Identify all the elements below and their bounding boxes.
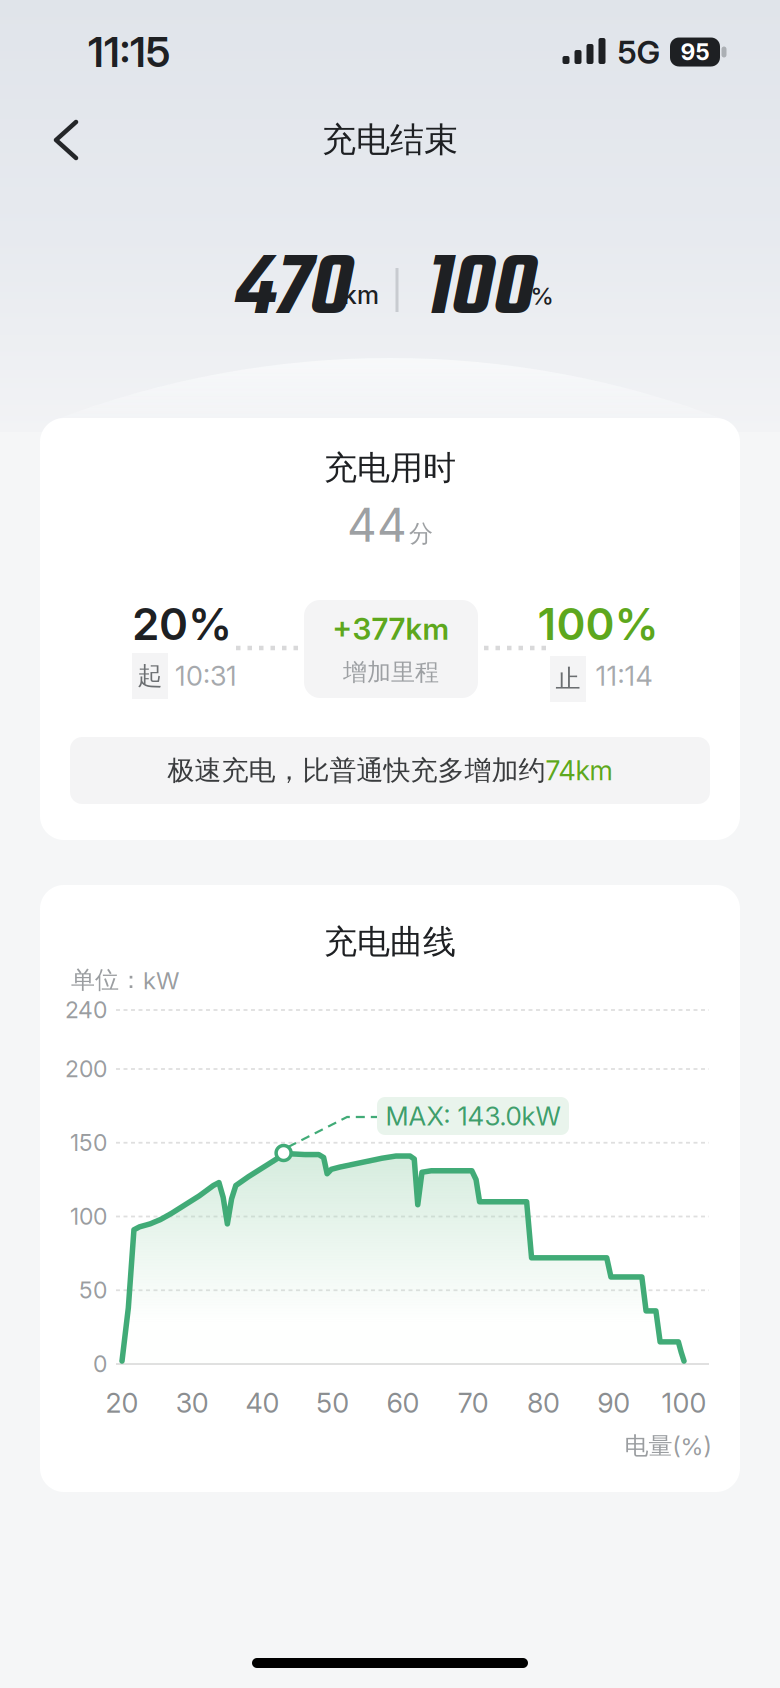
- staticText: 200: [65, 1055, 107, 1083]
- staticText: 5G: [617, 33, 660, 71]
- staticText: 充电曲线: [324, 921, 456, 963]
- staticText: 极速充电，比普通快充多增加约: [167, 753, 545, 787]
- staticText: 增加里程: [343, 657, 439, 687]
- staticText: 90: [597, 1387, 630, 1419]
- staticText: 11:15: [88, 27, 170, 77]
- staticText: %: [530, 281, 553, 310]
- staticText: 50: [79, 1276, 107, 1304]
- staticText: 起: [137, 660, 162, 692]
- staticText: 分: [409, 519, 433, 549]
- staticText: 100: [422, 226, 532, 356]
- button[interactable]: Back: [50, 118, 82, 162]
- staticText: 95: [680, 38, 709, 66]
- staticText: 44: [347, 497, 407, 553]
- staticText: 150: [70, 1129, 107, 1157]
- staticText: 单位：kW: [71, 965, 179, 995]
- staticText: MAX: 143.0kW: [385, 1100, 560, 1132]
- staticText: 20: [105, 1387, 138, 1419]
- staticText: 40: [245, 1387, 279, 1419]
- staticText: 30: [176, 1387, 209, 1419]
- staticText: 60: [386, 1387, 419, 1419]
- staticText: 100%: [537, 597, 658, 651]
- staticText: 止: [555, 663, 580, 695]
- staticText: +377km: [332, 611, 449, 647]
- staticText: km: [343, 280, 379, 310]
- staticText: 20%: [132, 597, 232, 651]
- staticText: 470: [231, 226, 348, 356]
- staticText: 充电用时: [324, 447, 456, 489]
- staticText: 10:31: [175, 660, 237, 692]
- staticText: 80: [527, 1387, 560, 1419]
- staticText: 50: [316, 1387, 349, 1419]
- staticText: 充电结束: [322, 119, 458, 161]
- staticText: 11:14: [595, 660, 652, 692]
- staticText: 100: [70, 1203, 107, 1230]
- staticText: 240: [65, 996, 107, 1024]
- staticText: 74km: [545, 754, 612, 787]
- staticText: 100: [661, 1387, 706, 1419]
- staticText: 电量(%): [624, 1431, 711, 1461]
- staticText: 0: [93, 1350, 107, 1378]
- staticText: 70: [458, 1387, 489, 1419]
